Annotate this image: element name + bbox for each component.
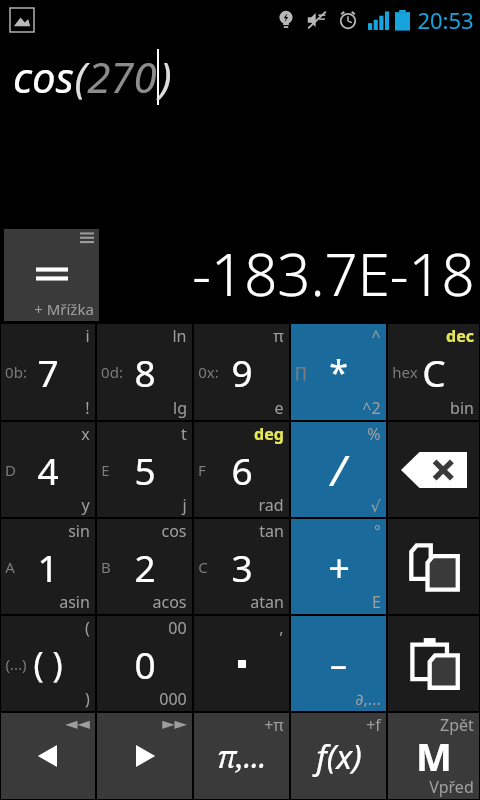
staticText: 4	[37, 445, 59, 495]
staticText: –	[330, 641, 347, 687]
staticText: dec	[446, 325, 474, 347]
button[interactable]: M	[388, 713, 479, 799]
staticText: 1	[37, 542, 59, 592]
button[interactable]: 0	[97, 616, 192, 711]
staticText: asin	[59, 591, 90, 613]
staticText: 9	[231, 347, 253, 397]
staticText: √	[370, 497, 381, 516]
button[interactable]: dot	[194, 616, 289, 711]
staticText: *	[329, 349, 348, 395]
staticText: Zpět	[440, 714, 474, 736]
staticText: )	[159, 48, 172, 105]
staticText: i	[85, 325, 90, 347]
staticText: ◄◄	[65, 714, 90, 733]
button[interactable]: 5	[97, 422, 192, 517]
staticText: 20:53	[417, 5, 474, 35]
staticText: +π	[264, 714, 284, 736]
button[interactable]: /	[291, 422, 386, 517]
staticText: (	[85, 617, 90, 639]
button[interactable]: 2	[97, 519, 192, 614]
button[interactable]: ( )	[1, 616, 95, 711]
staticText: ^	[371, 325, 381, 347]
staticText: 6	[231, 445, 253, 495]
button[interactable]: bs	[388, 422, 479, 517]
staticText: x	[81, 423, 90, 445]
button[interactable]: 3	[194, 519, 289, 614]
staticText: lg	[173, 397, 187, 419]
staticText: 3	[231, 542, 253, 592]
staticText: ^2	[362, 397, 381, 419]
staticText: C	[422, 347, 446, 397]
button[interactable]: copy	[388, 519, 479, 614]
staticText: 0x:	[198, 362, 219, 382]
staticText: 270	[87, 48, 157, 105]
staticText: bin	[450, 397, 474, 419]
staticText: +f	[366, 714, 381, 736]
staticText: 0d:	[101, 362, 123, 382]
staticText: hex	[392, 362, 418, 382]
staticText: t	[181, 423, 187, 445]
staticText: F	[198, 460, 206, 480]
staticText: j	[182, 494, 187, 516]
staticText: e	[274, 397, 284, 419]
staticText: 8	[134, 347, 156, 397]
staticText: 000	[159, 688, 187, 710]
staticText: (	[74, 48, 87, 105]
staticText: E	[101, 460, 110, 480]
staticText: acos	[152, 591, 187, 613]
button[interactable]: 8	[97, 324, 192, 420]
staticText: 5	[134, 445, 156, 495]
staticText: ►►	[162, 714, 187, 733]
button[interactable]: f(x)	[291, 713, 386, 799]
staticText: ∂,...	[355, 688, 381, 710]
staticText: deg	[254, 423, 284, 445]
staticText: ∏	[295, 364, 307, 381]
staticText: )	[85, 688, 90, 710]
staticText: +	[328, 541, 350, 593]
staticText: /	[331, 441, 346, 498]
staticText: C	[198, 557, 208, 577]
staticText: ,	[279, 617, 284, 639]
button[interactable]: 7	[1, 324, 95, 420]
button[interactable]: paste	[388, 616, 479, 711]
button[interactable]: 9	[194, 324, 289, 420]
staticText: 0b:	[5, 362, 27, 382]
staticText: π,...	[217, 736, 266, 777]
staticText: E	[372, 591, 381, 613]
staticText: Vpřed	[429, 776, 474, 798]
button[interactable]: Equals	[4, 229, 99, 321]
staticText: 7	[37, 347, 59, 397]
staticText: sin	[68, 520, 90, 542]
staticText: °	[374, 520, 381, 542]
staticText: A	[5, 557, 15, 577]
button[interactable]: –	[291, 616, 386, 711]
staticText: 0	[134, 639, 156, 689]
staticText: cos	[13, 48, 74, 105]
staticText: B	[101, 557, 111, 577]
button[interactable]: tl	[1, 713, 95, 799]
staticText: y	[81, 494, 90, 516]
button[interactable]: *	[291, 324, 386, 420]
button[interactable]: tr2	[97, 713, 192, 799]
staticText: ( )	[33, 641, 63, 687]
staticText: atan	[250, 591, 284, 613]
staticText: f(x)	[316, 734, 362, 779]
staticText: !	[85, 397, 90, 419]
staticText: -183.7E-18	[192, 234, 475, 313]
staticText: cos	[161, 520, 187, 542]
staticText: D	[5, 460, 16, 480]
button[interactable]: π,...	[194, 713, 289, 799]
staticText: M	[416, 730, 452, 782]
staticText: tan	[259, 520, 284, 542]
button[interactable]: C	[388, 324, 479, 420]
button[interactable]: 4	[1, 422, 95, 517]
staticText: 2	[134, 542, 156, 592]
staticText: π	[273, 325, 284, 347]
staticText: ln	[172, 325, 187, 347]
staticText: (...)	[5, 654, 27, 674]
staticText: rad	[258, 494, 284, 516]
button[interactable]: +	[291, 519, 386, 614]
button[interactable]: 6	[194, 422, 289, 517]
button[interactable]: 1	[1, 519, 95, 614]
staticText: + Mřížka	[34, 299, 94, 319]
